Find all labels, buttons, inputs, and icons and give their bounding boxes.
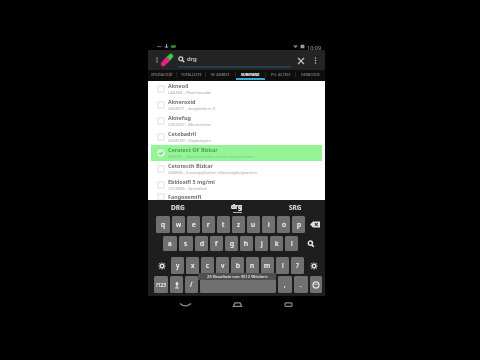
button[interactable]: Akneroxid (151, 97, 322, 113)
staticText: SRG (289, 203, 302, 212)
button[interactable]: ?123 (154, 276, 168, 293)
button[interactable]: More options (308, 53, 323, 68)
staticText: r (207, 220, 210, 229)
staticText: Ebkloxifl 5 mg/ml (168, 178, 215, 185)
button[interactable]: , (278, 276, 292, 293)
button[interactable]: ? (291, 257, 304, 274)
button[interactable]: SPEZIALITÄT (148, 70, 176, 78)
button[interactable]: b (231, 257, 244, 274)
button[interactable]: h (240, 236, 253, 251)
button[interactable]: m (261, 257, 274, 274)
staticText: e (192, 220, 196, 229)
button[interactable]: n (246, 257, 259, 274)
staticText: b (236, 261, 240, 270)
button[interactable]: ! (276, 257, 289, 274)
button[interactable]: search (300, 236, 322, 251)
staticText: x (191, 261, 195, 270)
button[interactable]: z (232, 216, 245, 233)
staticText: k (275, 239, 279, 248)
button[interactable]: s (179, 236, 193, 251)
staticText: i (268, 220, 270, 229)
button[interactable]: / (185, 276, 198, 293)
button[interactable]: TOTALLISTE (177, 70, 205, 78)
button[interactable]: e (187, 216, 200, 233)
staticText: 400836 - Imenopylkufser oktrostigbulykar… (168, 170, 258, 176)
button[interactable]: p (292, 216, 305, 233)
button[interactable]: Aknefug (151, 113, 322, 129)
staticText: p (297, 220, 301, 229)
staticText: 4524109 - Oxybutynin (168, 138, 211, 144)
staticText: 10:09 (307, 44, 322, 51)
button[interactable]: l (285, 236, 298, 251)
button[interactable]: Space (200, 276, 276, 293)
button[interactable]: u (247, 216, 260, 233)
button[interactable]: g (225, 236, 238, 251)
button[interactable]: c (201, 257, 214, 274)
staticText: . (300, 280, 302, 289)
button[interactable]: shift (306, 257, 322, 274)
button[interactable]: . (294, 276, 308, 293)
button[interactable]: Home (222, 296, 252, 313)
staticText: DRG (171, 203, 185, 212)
staticText: w (176, 220, 182, 229)
staticText: Cetotecth Bizkar (168, 162, 213, 169)
button[interactable]: del (307, 216, 322, 233)
staticText: t (222, 220, 225, 229)
button[interactable]: Ebkloxifl 5 mg/ml (151, 177, 322, 193)
button[interactable]: Clear search (293, 53, 308, 68)
button[interactable]: mic (170, 276, 183, 293)
staticText: z (237, 220, 241, 229)
button[interactable]: shift (154, 257, 169, 274)
button[interactable]: i (262, 216, 275, 233)
staticText: 2203227 - Minocrema (168, 122, 211, 128)
button[interactable]: k (270, 236, 283, 251)
staticText: m (264, 261, 271, 270)
staticText: c (206, 261, 210, 270)
button[interactable]: t (217, 216, 230, 233)
button[interactable]: drg (207, 200, 266, 214)
button[interactable]: W. ANBIET (206, 70, 235, 78)
staticText: v (221, 261, 225, 270)
staticText: ! (282, 261, 284, 270)
staticText: f (215, 239, 218, 248)
button[interactable]: f (210, 236, 223, 251)
button[interactable]: emoji (310, 276, 322, 293)
button[interactable]: x (186, 257, 199, 274)
button[interactable]: PH. ACTIVE (266, 70, 295, 78)
button[interactable]: Akneoil (151, 81, 322, 97)
staticText: SPEZIALITÄT (151, 72, 173, 77)
button[interactable]: o (277, 216, 290, 233)
button[interactable]: j (255, 236, 268, 251)
staticText: LA0404 - Pharmacode (168, 90, 211, 96)
staticText: 25 Resultate von 3512 Wörtern (207, 274, 268, 280)
staticText: drg (231, 202, 243, 211)
staticText: ?123 (156, 282, 166, 288)
staticText: 4024071 - Amphiderm 5 (168, 106, 216, 112)
button[interactable]: r (202, 216, 215, 233)
button[interactable]: DRG (148, 200, 207, 214)
button[interactable]: Ceratect OF Bizkar (151, 145, 322, 161)
button[interactable]: a (163, 236, 177, 251)
button[interactable]: Cetobadril (151, 129, 322, 145)
button[interactable]: y (171, 257, 184, 274)
button[interactable]: Recent apps (273, 296, 303, 313)
staticText: o (282, 220, 286, 229)
staticText: Cetobadril (168, 130, 197, 137)
staticText: a (168, 239, 172, 248)
button[interactable]: SUBSTANZ (236, 70, 265, 78)
button[interactable]: Back (170, 296, 200, 313)
button[interactable]: q (156, 216, 170, 233)
staticText: ? (296, 261, 299, 270)
button[interactable]: FARBCODE (296, 70, 325, 78)
button[interactable]: w (172, 216, 185, 233)
button[interactable]: App icon (160, 53, 174, 67)
staticText: Ceratect OF Bizkar (168, 146, 218, 153)
button[interactable]: SRG (266, 200, 325, 214)
button[interactable]: Cetotecth Bizkar (151, 161, 322, 177)
button[interactable]: v (216, 257, 229, 274)
staticText: / (190, 280, 193, 289)
button[interactable]: Fangoxemifl (151, 193, 322, 200)
staticText: 1213006 - Grienthal (168, 186, 207, 192)
button[interactable]: d (195, 236, 208, 251)
staticText: Akneroxid (168, 98, 196, 105)
